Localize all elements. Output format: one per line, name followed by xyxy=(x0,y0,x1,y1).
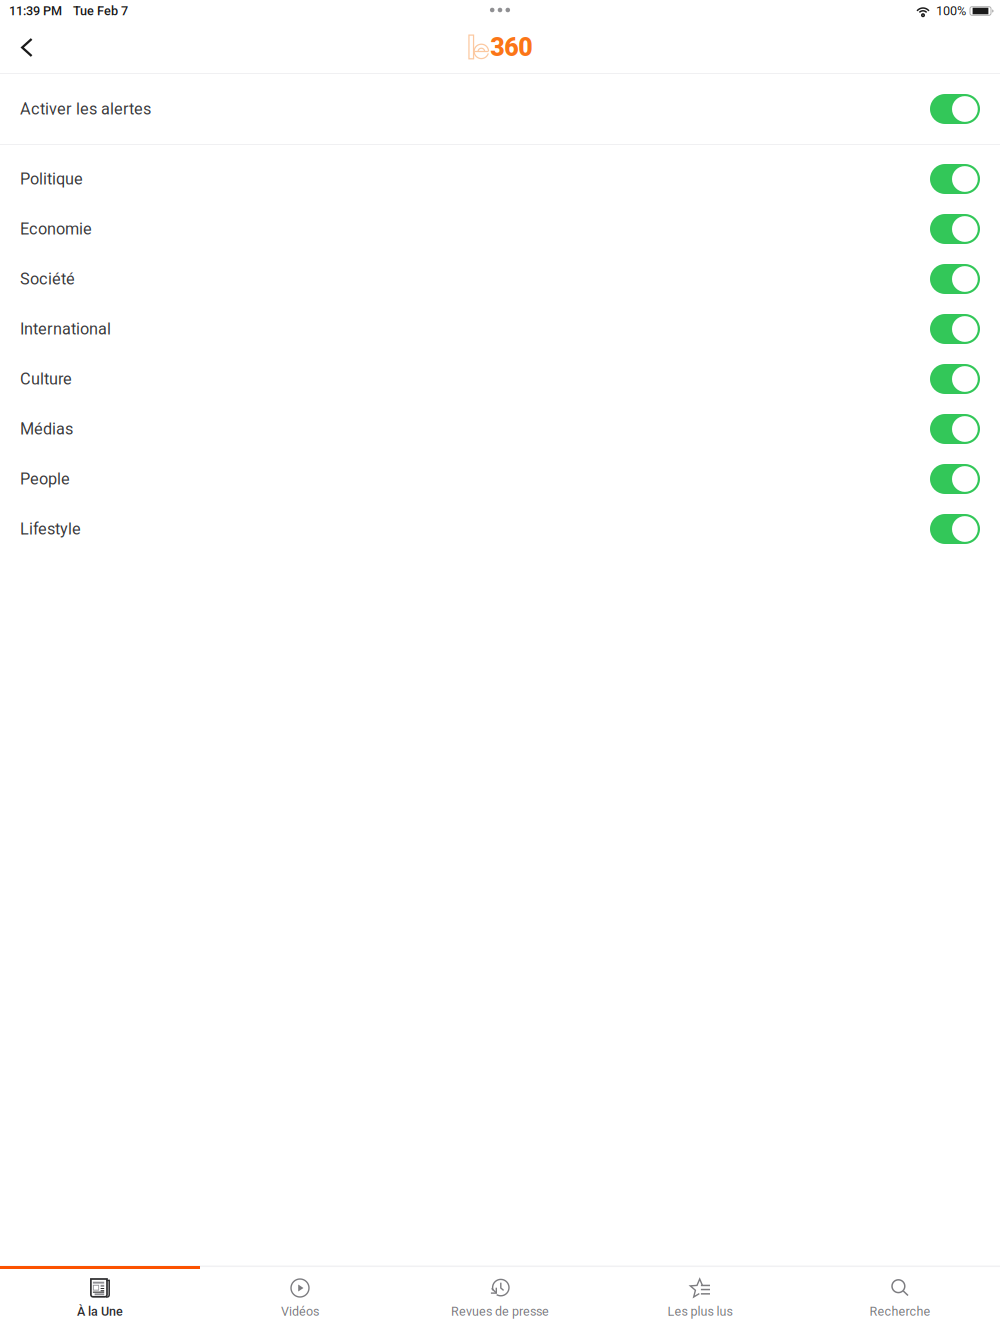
staticText: Activer les alertes xyxy=(20,99,151,119)
staticText: À la Une xyxy=(77,1304,123,1319)
staticText: Médias xyxy=(20,419,73,439)
button[interactable]: Politique xyxy=(0,154,1000,204)
staticText: Culture xyxy=(20,369,72,389)
button[interactable]: Economie xyxy=(0,204,1000,254)
button[interactable]: International xyxy=(0,304,1000,354)
staticText: Les plus lus xyxy=(667,1304,732,1319)
staticText: People xyxy=(20,469,70,489)
staticText: Société xyxy=(20,269,75,289)
button[interactable]: Activer les alertes xyxy=(0,74,1000,144)
button[interactable]: Médias xyxy=(0,404,1000,454)
staticText: Vidéos xyxy=(281,1304,319,1319)
staticText: Recherche xyxy=(869,1304,930,1319)
staticText: Politique xyxy=(20,169,83,189)
button[interactable]: Culture xyxy=(0,354,1000,404)
button[interactable]: Back xyxy=(12,30,52,65)
staticText: Tue Feb 7 xyxy=(73,4,128,18)
staticText: 11:39 PM xyxy=(9,4,62,18)
staticText: Lifestyle xyxy=(20,519,81,539)
button[interactable]: Revues de presse xyxy=(400,1269,600,1334)
staticText: 100% xyxy=(936,4,966,18)
button[interactable]: Société xyxy=(0,254,1000,304)
staticText: Economie xyxy=(20,219,92,239)
button[interactable]: People xyxy=(0,454,1000,504)
button[interactable]: Recherche xyxy=(800,1269,1000,1334)
staticText: Revues de presse xyxy=(451,1304,549,1319)
button[interactable]: Les plus lus xyxy=(600,1269,800,1334)
staticText: International xyxy=(20,319,111,339)
button[interactable]: À la Une xyxy=(0,1269,200,1334)
button[interactable]: Vidéos xyxy=(200,1269,400,1334)
button[interactable]: Lifestyle xyxy=(0,504,1000,554)
staticText: 360 xyxy=(490,33,532,62)
